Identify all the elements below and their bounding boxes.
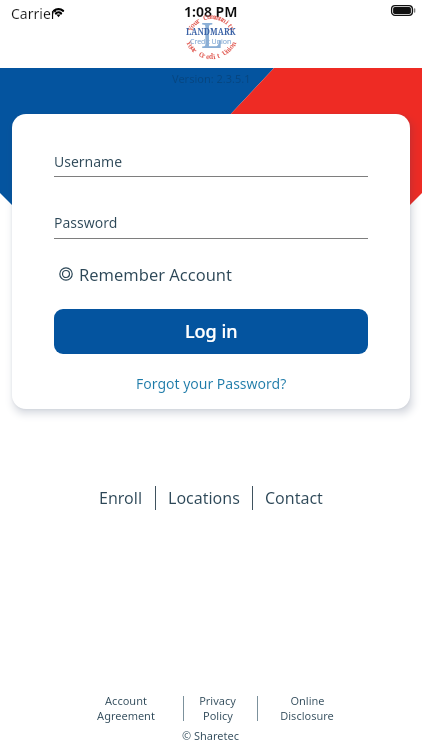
button[interactable]: Online <box>280 693 334 723</box>
staticText: Y <box>184 40 195 47</box>
staticText: Disclosure <box>280 708 334 723</box>
staticText: Account <box>105 693 147 708</box>
staticText: Online <box>290 693 325 708</box>
staticText: Agreement <box>97 708 155 723</box>
staticText: n <box>220 15 229 26</box>
button[interactable]: Contact <box>261 483 327 513</box>
staticText: 1:08 PM <box>184 2 238 21</box>
staticText: Remember Account <box>79 263 233 285</box>
staticText: n <box>228 40 239 47</box>
button[interactable]: Remember Account <box>56 262 233 286</box>
staticText: U <box>220 47 229 58</box>
staticText: C <box>202 12 209 22</box>
staticText: Log in <box>185 319 238 344</box>
staticText: r <box>190 46 199 55</box>
button[interactable]: Log in <box>54 309 368 354</box>
staticText: e <box>205 52 211 61</box>
staticText: m <box>213 12 222 23</box>
staticText: o <box>207 12 211 21</box>
staticText: o <box>226 43 236 50</box>
staticText: Carrier <box>11 4 57 23</box>
staticText: C <box>197 49 206 60</box>
staticText: n <box>223 45 232 55</box>
staticText: u <box>217 13 226 24</box>
staticText: Username <box>54 152 123 171</box>
staticText: i <box>212 52 217 61</box>
staticText: d <box>209 52 214 61</box>
staticText: t <box>226 22 235 29</box>
staticText: © Sharetec <box>182 728 240 743</box>
button[interactable]: Forgot your Password? <box>132 372 291 395</box>
staticText: Privacy <box>199 693 236 708</box>
staticText: r <box>201 51 207 60</box>
staticText: u <box>188 44 199 53</box>
staticText: Password <box>54 213 118 232</box>
staticText: Y <box>185 24 196 33</box>
staticText: Policy <box>203 708 233 723</box>
staticText: i <box>223 18 232 27</box>
button[interactable]: Privacy <box>199 693 236 723</box>
staticText: i <box>225 45 234 52</box>
staticText: LANDMARK <box>186 26 236 37</box>
staticText: o <box>187 21 197 30</box>
staticText: t <box>216 51 221 60</box>
staticText: m <box>210 12 217 21</box>
button[interactable]: Account <box>97 693 155 723</box>
staticText: y <box>227 25 237 32</box>
staticText: o <box>186 43 196 50</box>
button[interactable]: Locations <box>164 483 244 513</box>
staticText: L <box>201 12 223 58</box>
button[interactable]: Enroll <box>95 483 147 513</box>
staticText: Credit Union <box>190 37 232 47</box>
staticText: Version: 2.3.5.1 <box>172 71 251 86</box>
staticText: r <box>194 16 202 25</box>
staticText: u <box>190 18 200 27</box>
